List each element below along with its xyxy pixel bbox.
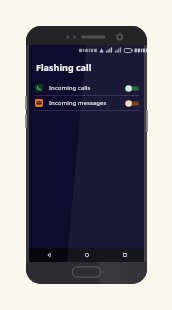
- staticText: Incoming calls: [49, 84, 125, 92]
- staticText: Flashing call: [36, 61, 92, 73]
- button[interactable]: Incoming calls toggle: [125, 85, 139, 92]
- staticText: Incoming messages: [49, 99, 125, 107]
- button[interactable]: Incoming messages toggle: [125, 100, 139, 107]
- button[interactable]: Back: [29, 248, 68, 262]
- button[interactable]: Incoming calls: [29, 81, 144, 95]
- button[interactable]: Recents: [106, 248, 144, 262]
- button[interactable]: Home: [68, 248, 106, 262]
- button[interactable]: Incoming messages: [29, 96, 144, 110]
